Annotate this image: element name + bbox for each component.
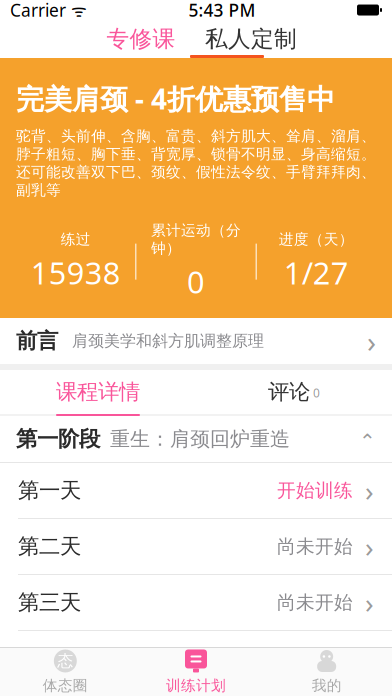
staticText: 1/27	[284, 252, 349, 293]
staticText: ›	[365, 472, 374, 509]
staticText: ›	[367, 321, 376, 360]
staticText: 0	[313, 385, 320, 401]
staticText: 肩颈美学和斜方肌调整原理	[72, 331, 264, 351]
staticText: 专修课	[106, 25, 175, 53]
button[interactable]: 我的	[261, 643, 392, 696]
staticText: 态	[57, 651, 73, 671]
staticText: 进度（天）	[279, 230, 354, 248]
staticText: ⌃	[359, 430, 376, 452]
button[interactable]: 第二天	[0, 519, 392, 574]
staticText: 评论	[268, 379, 310, 405]
staticText: 第四天	[18, 645, 81, 672]
button[interactable]: 第四天	[0, 631, 392, 686]
button[interactable]: 专修课	[86, 20, 196, 58]
staticText: 体态圈	[43, 676, 88, 694]
staticText: 驼背、头前伸、含胸、富贵、斜方肌大、耸肩、溜肩、脖子粗短、胸下垂、背宽厚、锁骨不…	[16, 127, 376, 199]
button[interactable]: 态	[0, 643, 131, 696]
button[interactable]: 训练计划	[131, 643, 261, 696]
button[interactable]: 第三天	[0, 575, 392, 630]
button[interactable]: 前言	[0, 318, 392, 364]
staticText: ›	[365, 528, 374, 565]
staticText: 完美肩颈 - 4折优惠预售中	[16, 80, 335, 117]
staticText: 0	[187, 261, 205, 302]
button[interactable]: 私人定制	[196, 20, 306, 58]
staticText: 重生：肩颈回炉重造	[110, 427, 290, 451]
staticText: 5:43 PM	[188, 0, 255, 21]
staticText: 我的	[312, 676, 342, 694]
button[interactable]: 第一阶段	[0, 416, 392, 462]
button[interactable]: 课程详情	[0, 370, 196, 414]
staticText: 练过	[61, 230, 91, 248]
staticText: ᯤ	[66, 0, 87, 21]
button[interactable]: 第一天	[0, 463, 392, 518]
staticText: 第一阶段	[16, 426, 100, 452]
staticText: 开始训练	[277, 479, 353, 502]
staticText: 累计运动（分钟）	[151, 221, 241, 257]
staticText: 前言	[16, 328, 58, 354]
staticText: 私人定制	[205, 25, 297, 53]
button[interactable]: 评论	[196, 370, 392, 414]
staticText: 第二天	[18, 533, 81, 560]
staticText: 尚未开始	[277, 647, 353, 670]
staticText: 第一天	[18, 477, 81, 504]
staticText: 尚未开始	[277, 535, 353, 558]
staticText: 课程详情	[56, 379, 140, 405]
staticText: ›	[365, 640, 374, 677]
staticText: 15938	[31, 252, 121, 293]
staticText: 训练计划	[166, 676, 226, 694]
staticText: Carrier	[10, 0, 66, 21]
staticText: 尚未开始	[277, 591, 353, 614]
staticText: ›	[365, 584, 374, 621]
staticText: 第三天	[18, 589, 81, 616]
